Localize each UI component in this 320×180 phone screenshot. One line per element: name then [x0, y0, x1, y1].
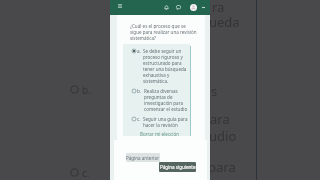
staticText: Realiza diversas [144, 88, 178, 94]
staticText: a. [137, 48, 141, 54]
staticText: estructurado para [143, 60, 182, 66]
staticText: tener una búsqueda [143, 66, 187, 72]
button[interactable]: Menu [115, 1, 124, 10]
staticText: b. [82, 83, 91, 97]
staticText: investigación para [144, 100, 183, 106]
button[interactable]: Notifications [162, 3, 171, 12]
staticText: udio [209, 127, 237, 145]
button[interactable]: Messages [174, 3, 183, 12]
button[interactable]: b. [131, 88, 188, 112]
staticText: c. [82, 166, 90, 180]
staticText: Página siguiente [160, 164, 196, 170]
button[interactable]: Expand menu [200, 4, 207, 11]
button[interactable]: c. [131, 116, 188, 128]
staticText: sistemática? [130, 35, 157, 41]
button[interactable]: Borrar mi elección [140, 131, 179, 137]
staticText: s [211, 82, 218, 100]
staticText: hacer la revisión [143, 122, 178, 128]
staticText: exhaustiva y [143, 72, 170, 78]
staticText: ueda [209, 13, 240, 31]
staticText: Página anterior [126, 155, 160, 161]
staticText: comenzar el estudio [144, 106, 188, 112]
staticText: para [208, 158, 236, 176]
staticText: Se debe seguir un [143, 48, 182, 54]
button[interactable]: Página anterior [126, 153, 160, 162]
staticText: b. [137, 88, 142, 94]
button[interactable]: Profile [189, 3, 198, 12]
staticText: sistemática. [143, 78, 169, 84]
staticText: preguntas de [144, 94, 173, 100]
staticText: ¿Cuál es el proceso que se [130, 23, 186, 29]
staticText: ara [210, 110, 230, 128]
staticText: Seguir una guía para [143, 116, 188, 122]
button[interactable]: a. [131, 48, 187, 84]
staticText: proceso riguroso y [143, 54, 183, 60]
staticText: sigue para realizar una revisión [130, 29, 197, 35]
button[interactable]: Página siguiente [159, 162, 196, 172]
staticText: ra [212, 0, 225, 16]
staticText: c. [137, 116, 141, 122]
staticText: Borrar mi elección [140, 131, 179, 137]
